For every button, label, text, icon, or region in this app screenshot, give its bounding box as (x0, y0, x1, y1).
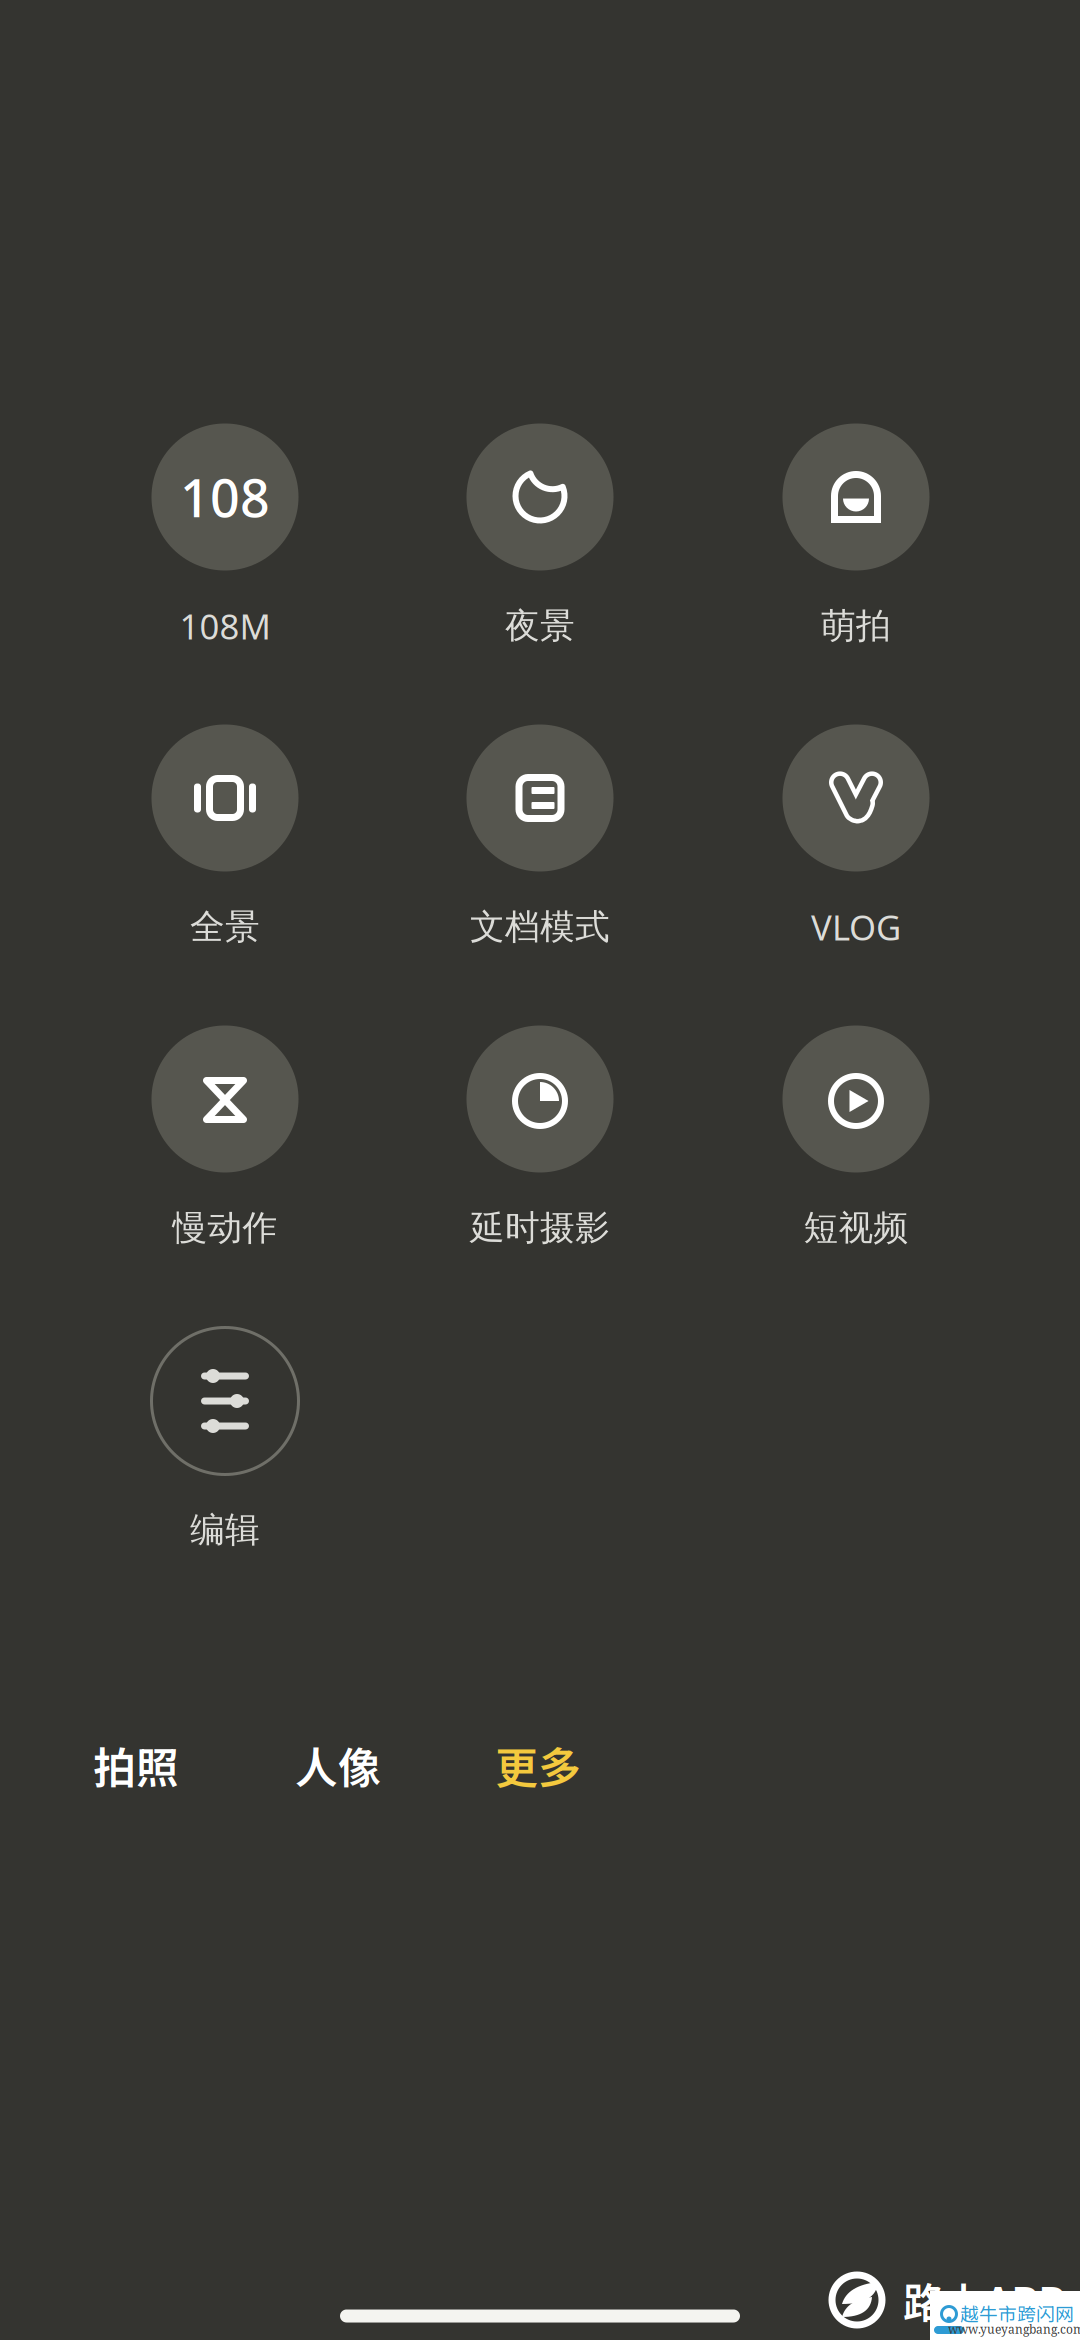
staticText: 延时摄影 (470, 1207, 610, 1249)
staticText: 全景 (190, 906, 260, 948)
staticText: 文档模式 (470, 906, 610, 948)
button[interactable]: 短视频 (726, 969, 986, 1229)
button[interactable]: 108 (95, 367, 355, 627)
button[interactable]: 人像 (263, 1717, 413, 1813)
button[interactable]: 延时摄影 (410, 969, 670, 1229)
button[interactable]: 编辑 (95, 1271, 355, 1531)
button[interactable]: 更多 (463, 1717, 613, 1813)
button[interactable]: 全景 (95, 668, 355, 928)
button[interactable]: 慢动作 (95, 969, 355, 1229)
staticText: 慢动作 (172, 1207, 277, 1249)
staticText: 拍照 (93, 1734, 179, 1796)
staticText: 编辑 (190, 1509, 260, 1551)
staticText: VLOG (811, 904, 901, 950)
staticText: 更多 (495, 1734, 581, 1796)
staticText: 人像 (295, 1734, 381, 1796)
button[interactable]: 萌拍 (726, 367, 986, 627)
button[interactable]: 文档模式 (410, 668, 670, 928)
button[interactable]: VLOG (726, 668, 986, 928)
staticText: 短视频 (803, 1207, 908, 1249)
staticText: 萌拍 (821, 605, 891, 647)
staticText: 夜景 (505, 605, 575, 647)
button[interactable]: 拍照 (61, 1717, 211, 1813)
staticText: 108 (180, 462, 270, 532)
staticText: www.yueyangbang.com (948, 2321, 1080, 2337)
staticText: 路上APP (903, 2270, 1065, 2330)
staticText: 108M (179, 603, 270, 649)
button[interactable]: 夜景 (410, 367, 670, 627)
staticText: 越牛市跨闪网 (960, 2299, 1074, 2326)
